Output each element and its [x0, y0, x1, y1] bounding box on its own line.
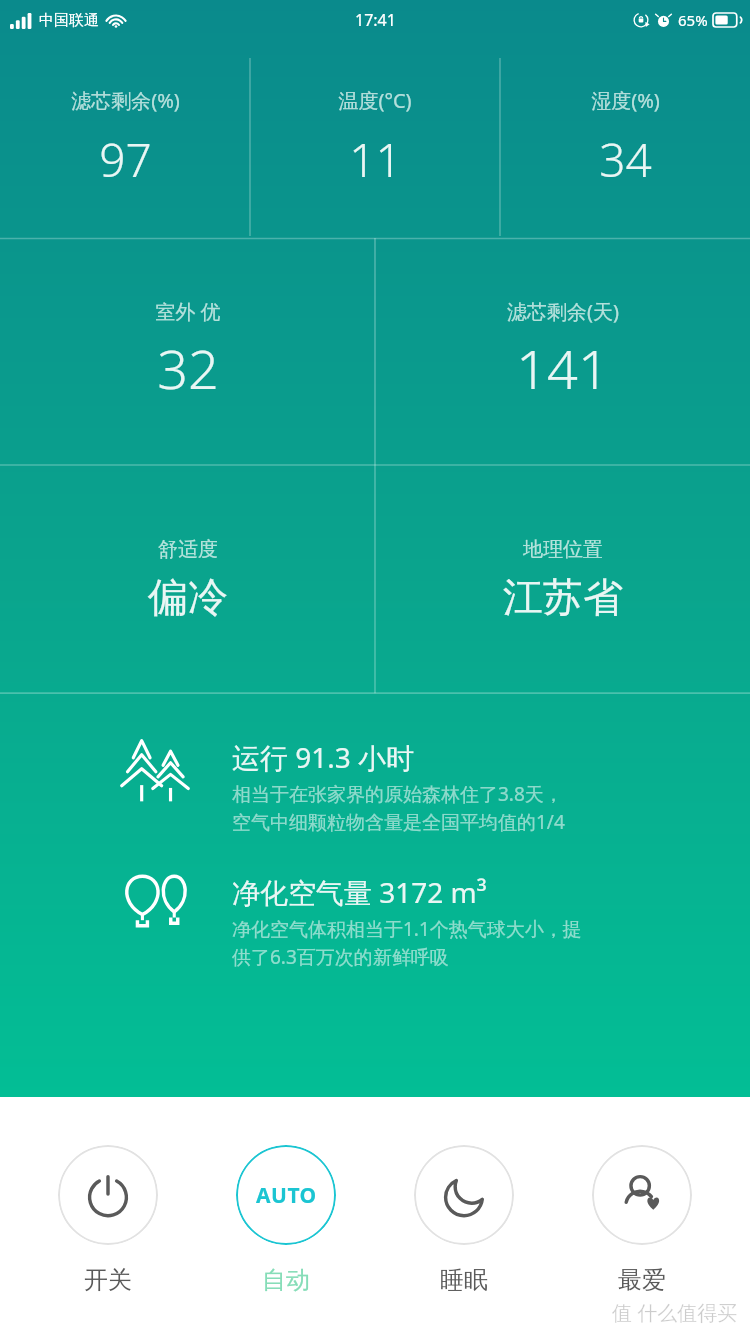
other: 开关	[58, 1145, 158, 1245]
button[interactable]: 地理位置	[375, 465, 750, 694]
staticText: 65%	[678, 10, 708, 30]
staticText: 偏冷	[148, 572, 228, 622]
staticText: 温度(°C)	[338, 87, 412, 114]
button[interactable]: Forest	[118, 738, 726, 835]
staticText: 11	[349, 128, 402, 191]
staticText: 湿度(%)	[591, 87, 660, 114]
staticText: 开关	[84, 1265, 132, 1295]
staticText: 中国联通	[39, 11, 99, 30]
other: Forest	[118, 738, 192, 804]
staticText: 净化空气量 3172 m³	[232, 873, 487, 911]
staticText: 34	[599, 128, 652, 191]
staticText: 睡眠	[440, 1265, 488, 1295]
button[interactable]: 最爱	[572, 1145, 712, 1295]
staticText: 97	[99, 128, 152, 191]
staticText: 最爱	[618, 1265, 666, 1295]
button[interactable]: 滤芯剩余(%)	[0, 40, 250, 238]
staticText: 运行 91.3 小时	[232, 738, 415, 776]
staticText: 供了6.3百万次的新鲜呼吸	[232, 944, 449, 970]
staticText: 空气中细颗粒物含量是全国平均值的1/4	[232, 809, 565, 835]
button[interactable]: 自动	[216, 1145, 356, 1295]
staticText: 值 什么值得买	[612, 1299, 738, 1326]
button[interactable]: Balloons	[118, 873, 726, 970]
staticText: 江苏省	[503, 572, 623, 622]
staticText: 净化空气体积相当于1.1个热气球大小，提	[232, 916, 582, 942]
staticText: 141	[516, 331, 609, 405]
staticText: 相当于在张家界的原始森林住了3.8天，	[232, 781, 563, 807]
staticText: 地理位置	[523, 537, 603, 562]
other: 自动	[236, 1145, 336, 1245]
button[interactable]: 湿度(%)	[500, 40, 750, 238]
other: Balloons	[118, 873, 192, 939]
button[interactable]: 温度(°C)	[250, 40, 500, 238]
button[interactable]: 睡眠	[394, 1145, 534, 1295]
button[interactable]: 开关	[38, 1145, 178, 1295]
staticText: 舒适度	[158, 537, 218, 562]
other: 最爱	[592, 1145, 692, 1245]
other: 睡眠	[414, 1145, 514, 1245]
staticText: 自动	[262, 1265, 310, 1295]
staticText: AUTO	[256, 1181, 317, 1210]
staticText: 滤芯剩余(%)	[71, 87, 180, 114]
button[interactable]: 滤芯剩余(天)	[375, 238, 750, 465]
staticText: 滤芯剩余(天)	[507, 298, 619, 325]
button[interactable]: 室外 优	[0, 238, 375, 465]
staticText: 32	[157, 331, 219, 405]
staticText: 17:41	[355, 9, 396, 31]
staticText: 室外 优	[155, 298, 221, 325]
button[interactable]: 舒适度	[0, 465, 375, 694]
